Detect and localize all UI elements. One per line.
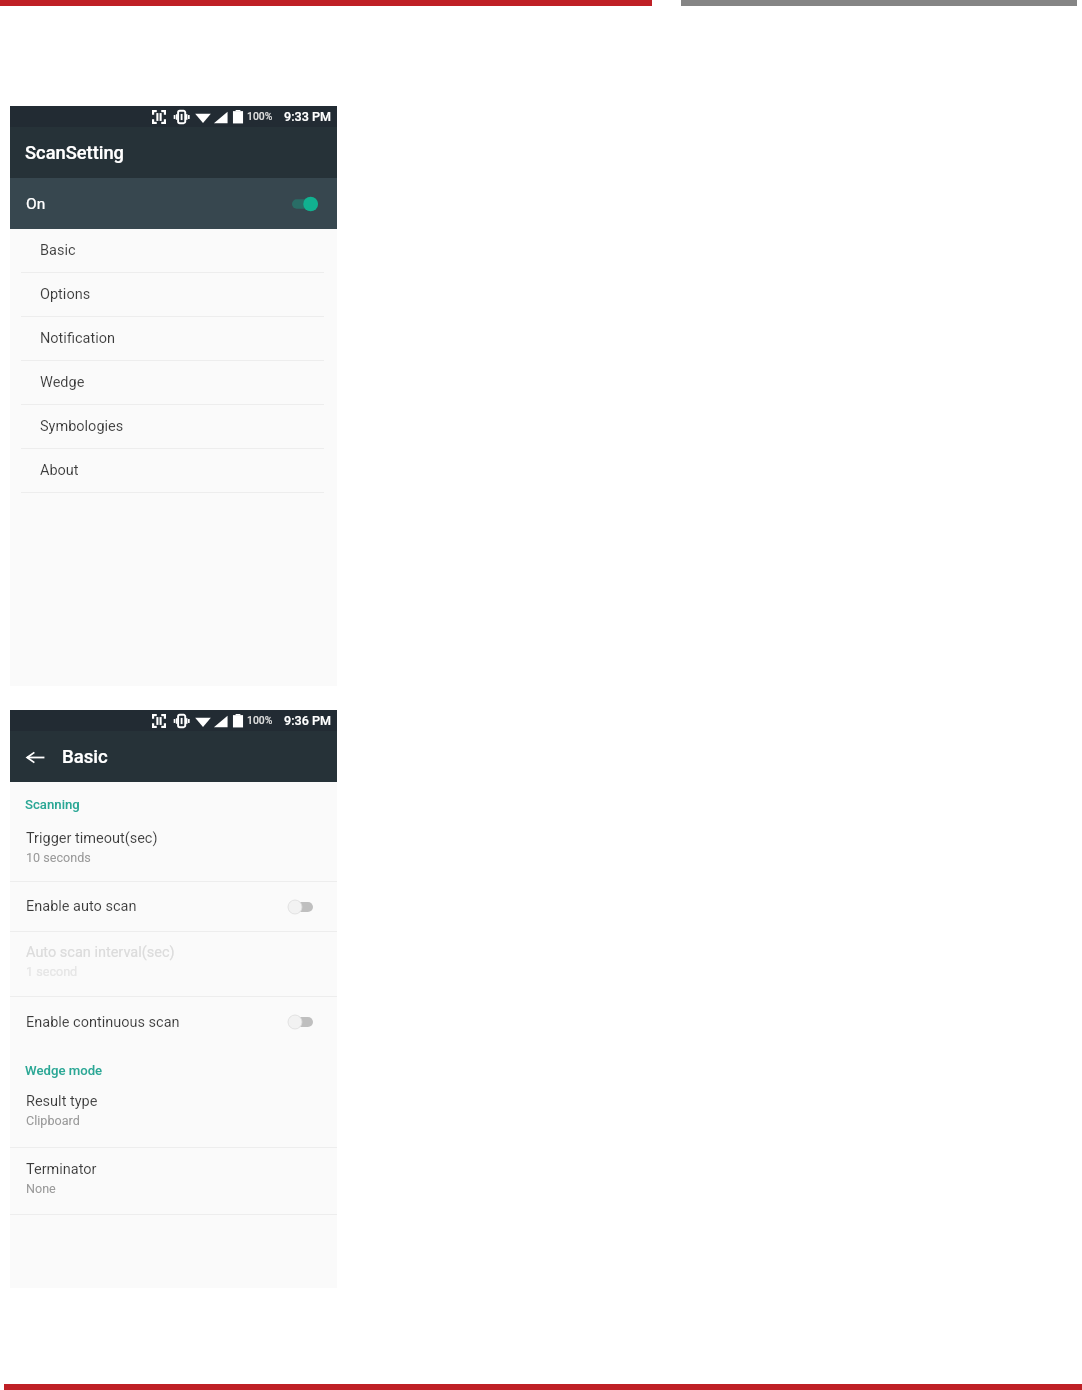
button[interactable]: Enable continuous scan xyxy=(10,997,337,1047)
staticText: Options xyxy=(40,286,91,303)
staticText: Terminator xyxy=(26,1161,97,1178)
button[interactable]: Options xyxy=(10,273,337,316)
button[interactable]: Symbologies xyxy=(10,405,337,448)
staticText: 100% xyxy=(247,714,273,726)
staticText: 10 seconds xyxy=(26,850,91,865)
button[interactable]: On xyxy=(10,178,337,229)
staticText: Auto scan interval(sec) xyxy=(26,944,175,961)
staticText: On xyxy=(26,195,46,213)
button[interactable]: About xyxy=(10,449,337,492)
staticText: About xyxy=(40,462,79,479)
staticText: Notification xyxy=(40,330,115,347)
staticText: Basic xyxy=(62,746,108,768)
staticText: Result type xyxy=(26,1093,98,1110)
staticText: Enable auto scan xyxy=(26,898,137,915)
staticText: 1 second xyxy=(26,964,78,979)
staticText: Scanning xyxy=(25,797,80,812)
button[interactable]: Auto scan interval(sec) xyxy=(10,932,337,996)
staticText: ScanSetting xyxy=(25,142,124,163)
staticText: None xyxy=(26,1181,56,1196)
button[interactable]: Back xyxy=(22,744,48,770)
staticText: Clipboard xyxy=(26,1113,80,1128)
button[interactable]: Wedge xyxy=(10,361,337,404)
staticText: 9:33 PM xyxy=(284,109,331,124)
button[interactable]: Enable auto scan xyxy=(10,882,337,931)
staticText: 100% xyxy=(247,110,273,122)
button[interactable]: Notification xyxy=(10,317,337,360)
staticText: Wedge xyxy=(40,374,85,391)
button[interactable]: Result type xyxy=(10,1079,337,1147)
staticText: Symbologies xyxy=(40,418,124,435)
button[interactable]: Basic xyxy=(10,229,337,272)
staticText: Trigger timeout(sec) xyxy=(26,830,158,847)
staticText: Basic xyxy=(40,242,76,259)
staticText: Enable continuous scan xyxy=(26,1014,180,1031)
staticText: 9:36 PM xyxy=(284,713,331,728)
button[interactable]: Trigger timeout(sec) xyxy=(10,820,337,881)
staticText: Wedge mode xyxy=(25,1063,103,1078)
button[interactable]: Terminator xyxy=(10,1148,337,1214)
